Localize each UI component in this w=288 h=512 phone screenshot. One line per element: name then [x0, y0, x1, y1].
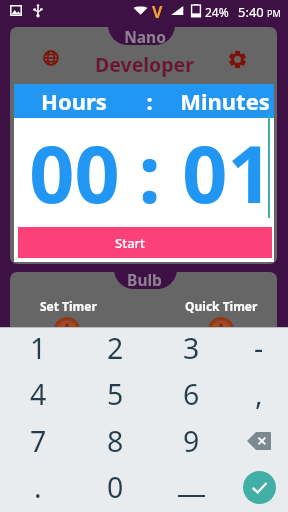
staticText: , [255, 375, 263, 414]
staticText: 2 [107, 329, 124, 368]
button[interactable]: 1 [4, 325, 72, 371]
staticText: 1 [30, 329, 47, 368]
button[interactable] [157, 464, 225, 510]
staticText: Minutes [180, 86, 270, 116]
button[interactable]: 7 [4, 418, 72, 464]
staticText: 00 [29, 119, 120, 227]
button[interactable]: 4 [4, 371, 72, 417]
button[interactable]: Quick Timer [208, 317, 234, 343]
staticText: 5 [107, 375, 124, 414]
button[interactable]: Set Timer [54, 317, 80, 343]
staticText: PM [267, 7, 281, 19]
button[interactable]: Language [33, 40, 69, 76]
other: Done [243, 471, 276, 504]
button[interactable]: Quick Timer [171, 298, 271, 314]
button[interactable]: 3 [157, 325, 225, 371]
staticText: Set Timer [40, 298, 97, 314]
staticText: 4 [30, 375, 47, 414]
staticText: Start [115, 234, 146, 252]
button[interactable]: . [4, 464, 72, 510]
button[interactable]: 0 [81, 464, 149, 510]
staticText: : [146, 86, 153, 116]
button[interactable]: Backspace [225, 418, 288, 464]
button[interactable]: Set Timer [18, 298, 118, 314]
button[interactable]: 8 [81, 418, 149, 464]
staticText: 7 [30, 422, 47, 461]
staticText: Bulb [127, 269, 162, 290]
staticText: 6 [183, 375, 200, 414]
button[interactable]: 5 [81, 371, 149, 417]
staticText: 8 [107, 422, 124, 461]
staticText: - [254, 329, 264, 368]
button[interactable]: 6 [157, 371, 225, 417]
button[interactable]: Done [225, 464, 288, 510]
button[interactable]: 9 [157, 418, 225, 464]
staticText: Quick Timer [185, 298, 258, 314]
staticText: : [138, 119, 161, 227]
staticText: 01 [182, 119, 273, 227]
staticText: 0 [107, 468, 124, 507]
button[interactable]: , [225, 371, 288, 417]
staticText: Hours [41, 86, 107, 116]
staticText: V [152, 1, 163, 23]
button[interactable]: Settings [219, 41, 255, 77]
other: Backspace [247, 432, 271, 450]
staticText: 5:40 [238, 3, 264, 21]
staticText: 9 [183, 422, 200, 461]
button[interactable]: 2 [81, 325, 149, 371]
button[interactable] [108, 22, 175, 45]
button[interactable]: Start [18, 227, 272, 258]
staticText: Nano [124, 26, 166, 47]
staticText: 24% [205, 4, 229, 20]
staticText: Developer [95, 51, 194, 78]
button[interactable]: - [225, 325, 288, 371]
staticText: . [34, 468, 42, 507]
button[interactable] [114, 266, 177, 289]
staticText: 3 [183, 329, 200, 368]
